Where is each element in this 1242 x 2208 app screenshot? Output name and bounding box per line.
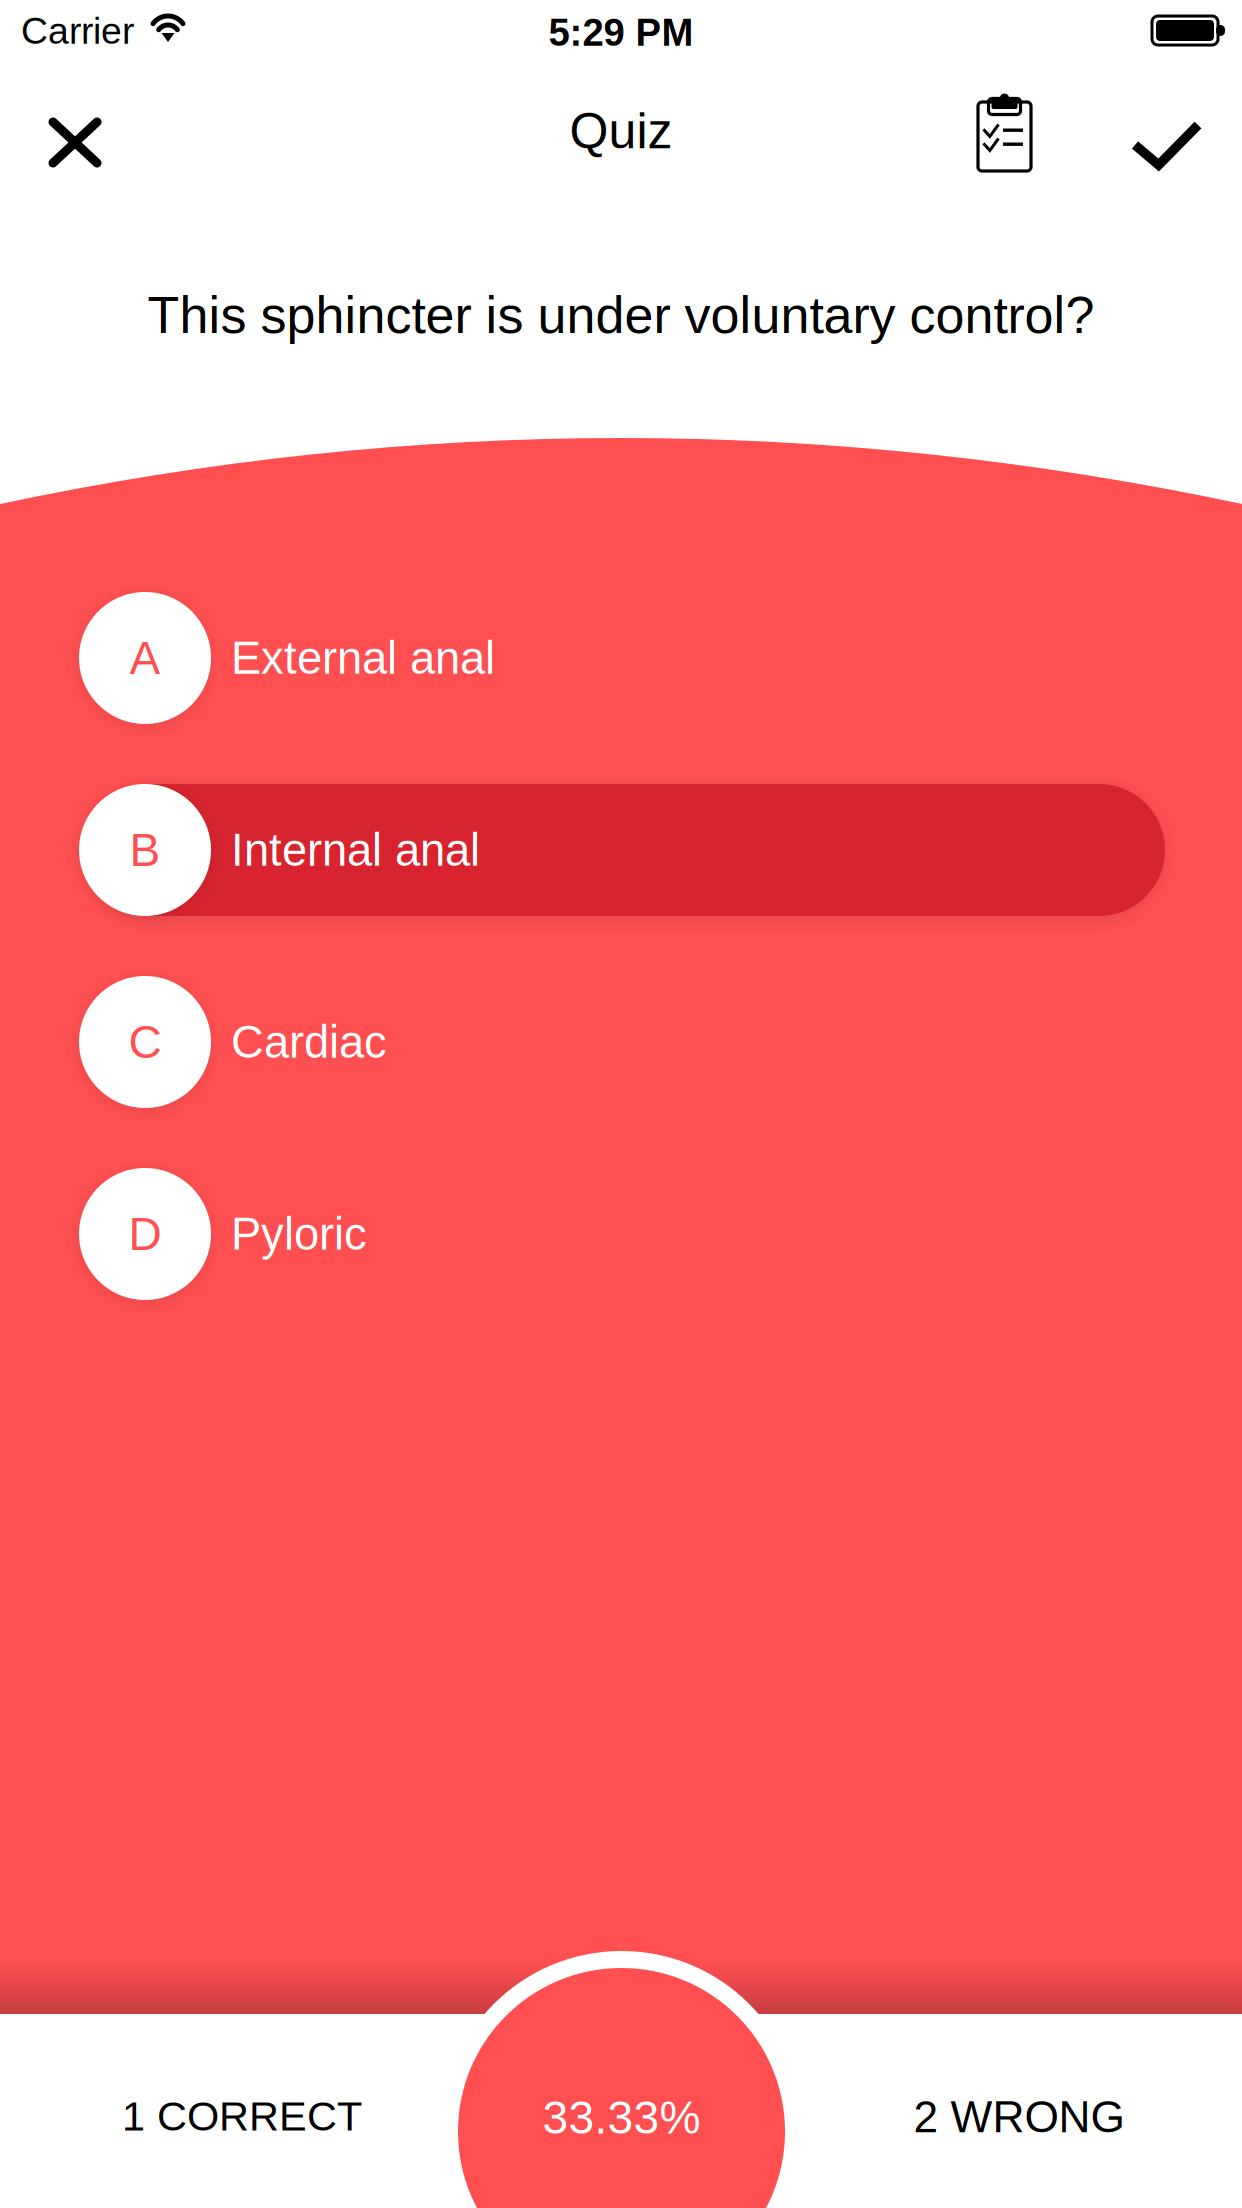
staticText: B (129, 824, 160, 876)
button[interactable]: Close (0, 60, 140, 180)
button[interactable]: Results (0, 60, 1242, 180)
staticText: 5:29 PM (548, 11, 693, 54)
staticText: Pyloric (231, 1209, 367, 1259)
button[interactable]: C (0, 976, 1242, 1108)
staticText: This sphincter is under voluntary contro… (147, 286, 1094, 344)
button[interactable]: A (0, 592, 1242, 724)
staticText: Carrier (21, 10, 134, 52)
staticText: 33.33% (542, 2092, 700, 2143)
staticText: Quiz (569, 103, 672, 159)
staticText: C (128, 1016, 161, 1068)
button[interactable]: D (0, 1168, 1242, 1300)
staticText: D (128, 1208, 161, 1260)
staticText: 2 WRONG (913, 2092, 1124, 2142)
button[interactable]: B (0, 784, 1242, 916)
staticText: Internal anal (231, 825, 480, 875)
staticText: A (129, 632, 160, 684)
staticText: External anal (231, 633, 495, 683)
staticText: 1 CORRECT (122, 2093, 362, 2139)
button[interactable]: Submit (0, 60, 1242, 180)
staticText: Cardiac (231, 1017, 387, 1067)
